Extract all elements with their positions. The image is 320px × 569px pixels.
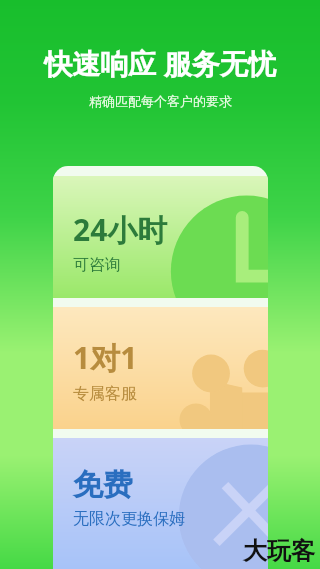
button[interactable]: 1对1 bbox=[53, 307, 268, 429]
staticText: 可咨询 bbox=[73, 255, 121, 275]
button[interactable]: 免费 bbox=[53, 438, 268, 569]
staticText: 无限次更换保姆 bbox=[73, 509, 185, 529]
staticText: 精确匹配每个客户的要求 bbox=[89, 93, 232, 109]
staticText: 免费 bbox=[73, 466, 133, 504]
staticText: 专属客服 bbox=[73, 384, 137, 404]
staticText: 24小时 bbox=[73, 209, 168, 250]
staticText: 大玩客 bbox=[243, 536, 315, 566]
staticText: 1对1 bbox=[73, 337, 138, 378]
button[interactable]: 24小时 bbox=[53, 176, 268, 298]
staticText: 快速响应 服务无忧 bbox=[44, 44, 276, 82]
